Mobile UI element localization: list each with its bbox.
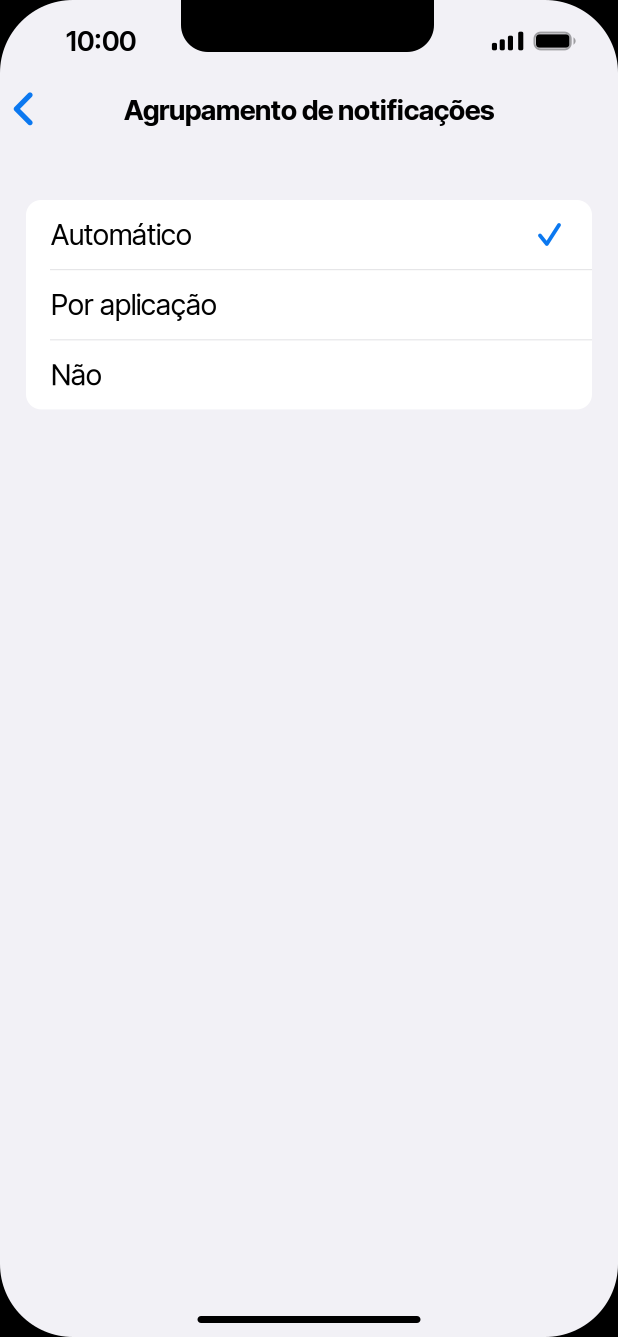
staticText: 10:00: [66, 24, 136, 58]
button[interactable]: Back: [0, 81, 46, 137]
button[interactable]: Automático: [26, 200, 592, 269]
button[interactable]: Não: [26, 340, 592, 409]
staticText: Agrupamento de notificações: [124, 93, 494, 127]
staticText: Não: [51, 358, 102, 392]
button[interactable]: Por aplicação: [26, 270, 592, 339]
staticText: Automático: [51, 217, 192, 252]
staticText: Por aplicação: [51, 287, 217, 322]
